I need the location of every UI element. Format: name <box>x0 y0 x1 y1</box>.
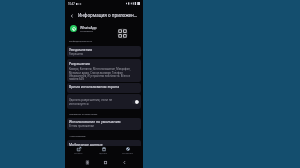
staticText: Мобильные данные <box>69 142 103 147</box>
button[interactable]: Мобильные данные <box>67 140 141 150</box>
button[interactable]: Recents <box>82 157 92 167</box>
staticText: Время использования экрана <box>69 84 120 89</box>
button[interactable]: Время использования экрана <box>67 83 141 93</box>
staticText: Информация о приложен… <box>78 12 138 18</box>
button[interactable]: Использование по умолчанию <box>67 118 141 130</box>
button[interactable]: Разрешения <box>67 59 141 82</box>
staticText: Установлено <box>80 30 93 33</box>
button[interactable]: Home <box>100 157 110 167</box>
staticText: 10:47 <box>68 2 75 6</box>
staticText: Уведомления <box>69 47 92 52</box>
staticText: В этом приложении <box>69 124 94 128</box>
button[interactable]: Back <box>119 157 129 167</box>
staticText: Использование по умолчанию <box>69 119 121 124</box>
staticText: Разрешения <box>69 61 90 66</box>
button[interactable]: Отключить <box>117 146 139 157</box>
staticText: Удалить <box>99 152 108 155</box>
staticText: Использование <box>69 135 86 138</box>
staticText: WhatsApp <box>80 25 97 30</box>
staticText: Камера, Контакты, Местоположение, Микроф… <box>69 67 139 81</box>
button[interactable]: QR code <box>114 25 130 41</box>
button[interactable]: Удалить <box>92 146 114 157</box>
staticText: Разрешено <box>69 52 84 56</box>
staticText: Конфиденциальность <box>69 40 93 43</box>
staticText: Отключить <box>122 152 134 155</box>
button[interactable]: Уведомления <box>67 46 141 57</box>
staticText: Параметры по умолчанию <box>69 113 98 116</box>
button[interactable]: Удалять разрешения, если не используется <box>67 94 141 109</box>
staticText: Открыть <box>74 152 83 155</box>
staticText: Удалять разрешения, если не используется <box>69 98 131 106</box>
button[interactable]: Back <box>67 11 76 20</box>
button[interactable]: Открыть <box>67 146 89 157</box>
